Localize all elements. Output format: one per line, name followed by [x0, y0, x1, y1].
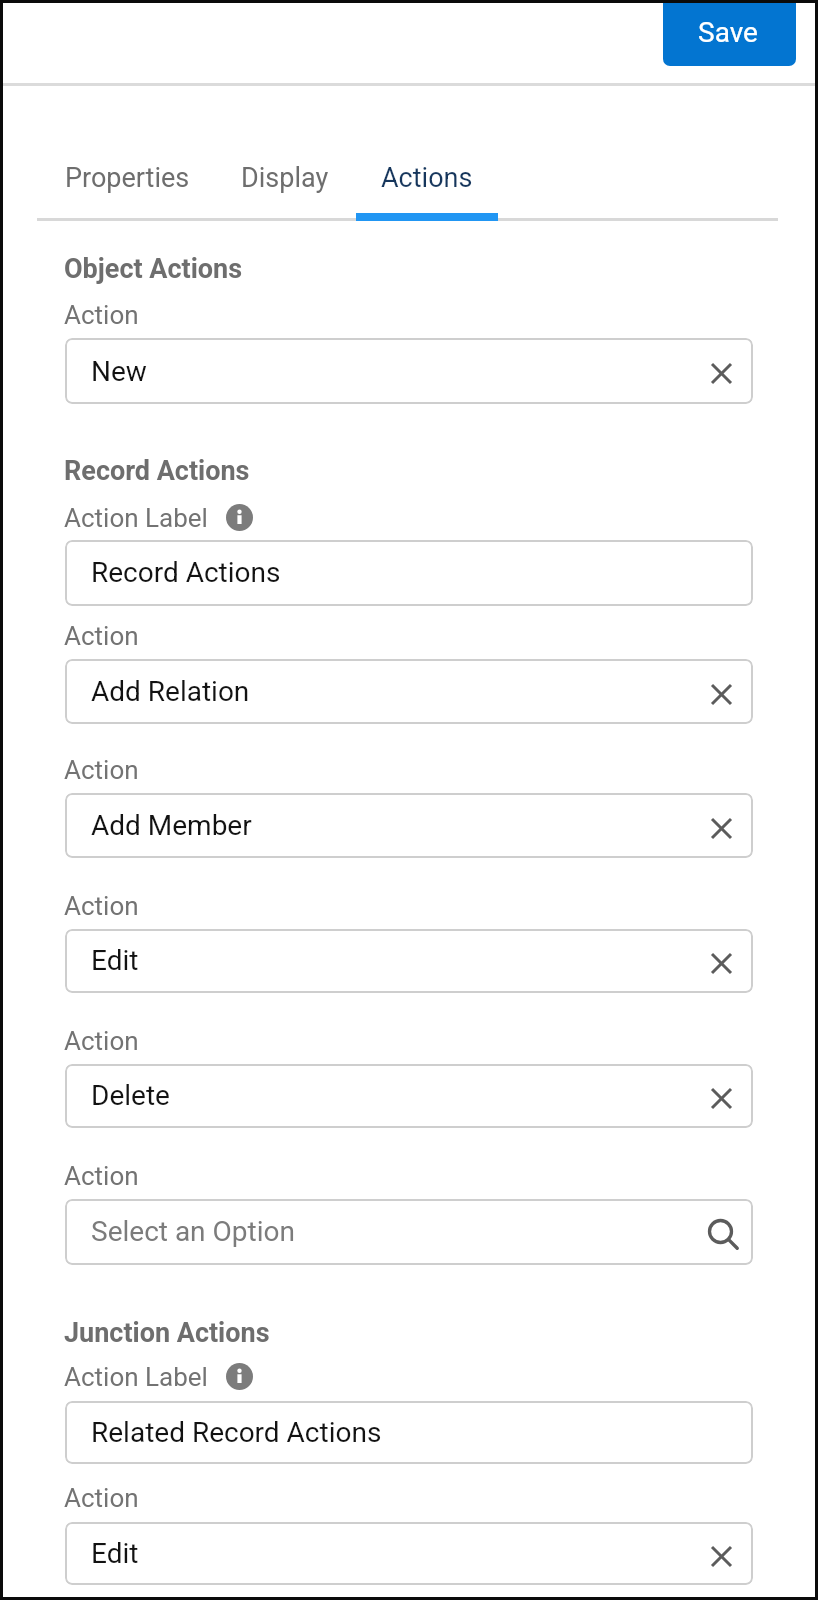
staticText: New	[91, 355, 147, 388]
button[interactable]: Edit	[65, 1522, 753, 1585]
staticText: Object Actions	[64, 253, 243, 285]
staticText: Action	[64, 1026, 139, 1056]
button[interactable]: Clear	[698, 1075, 744, 1121]
staticText: Properties	[65, 162, 190, 194]
staticText: Edit	[91, 944, 139, 977]
staticText: Action	[64, 1161, 139, 1191]
staticText: Action Label	[64, 503, 208, 533]
staticText: Save	[698, 16, 758, 49]
button[interactable]: Delete	[65, 1064, 753, 1128]
button[interactable]: Add Member	[65, 793, 753, 858]
button[interactable]: More information	[226, 1363, 253, 1390]
button[interactable]: Related Record Actions	[65, 1401, 753, 1464]
button[interactable]: Clear	[698, 1533, 744, 1579]
button[interactable]: Clear	[698, 350, 744, 396]
staticText: Edit	[91, 1537, 139, 1570]
staticText: Delete	[91, 1079, 170, 1112]
button[interactable]: Edit	[65, 929, 753, 993]
button[interactable]: More information	[226, 504, 253, 531]
staticText: Related Record Actions	[91, 1416, 382, 1449]
button[interactable]: Display	[216, 140, 354, 221]
button[interactable]: Actions	[354, 140, 500, 221]
staticText: Action	[64, 755, 139, 785]
staticText: Display	[241, 162, 329, 194]
staticText: Select an Option	[91, 1215, 295, 1248]
staticText: Action	[64, 891, 139, 921]
button[interactable]: Record Actions	[65, 540, 753, 606]
button[interactable]: New	[65, 338, 753, 404]
button[interactable]: Search	[698, 1209, 744, 1255]
staticText: Action Label	[64, 1362, 208, 1392]
button[interactable]: Clear	[698, 805, 744, 851]
staticText: Add Relation	[91, 675, 250, 708]
button[interactable]: Properties	[38, 140, 216, 221]
staticText: Action	[64, 300, 139, 330]
staticText: Actions	[381, 162, 473, 194]
staticText: Record Actions	[91, 556, 281, 589]
button[interactable]: Add Relation	[65, 659, 753, 724]
staticText: Record Actions	[64, 455, 250, 487]
button[interactable]: Clear	[698, 671, 744, 717]
button[interactable]: Clear	[698, 940, 744, 986]
button[interactable]: Save	[663, 0, 796, 66]
button[interactable]: Select an Option	[65, 1199, 753, 1265]
staticText: Action	[64, 1483, 139, 1513]
staticText: Junction Actions	[64, 1317, 270, 1349]
staticText: Action	[64, 621, 139, 651]
staticText: Add Member	[91, 809, 252, 842]
